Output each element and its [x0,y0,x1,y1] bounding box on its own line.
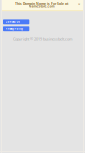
button[interactable]: Privacy Policy [3,26,29,31]
staticText: × [78,1,80,7]
staticText: Contact Us [6,20,20,24]
button[interactable]: Contact Us [3,19,29,24]
staticText: NameStore.com [28,4,54,9]
staticText: This Domain Name is For Sale at [15,1,68,6]
staticText: Privacy Policy [6,27,23,30]
button[interactable]: Close [76,1,81,6]
staticText: Copyright © 2019 businessbelt.com [13,36,72,41]
